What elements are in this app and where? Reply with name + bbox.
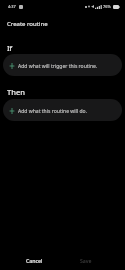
staticText: 76% xyxy=(103,4,111,9)
staticText: Add what this routine will do. xyxy=(18,108,88,115)
staticText: Save xyxy=(80,257,92,264)
button[interactable]: Save xyxy=(74,254,98,267)
staticText: 4:37 xyxy=(8,4,16,9)
staticText: Then xyxy=(7,87,25,97)
staticText: Add what will trigger this routine. xyxy=(18,63,98,70)
button[interactable]: Cancel xyxy=(20,254,49,267)
staticText: If xyxy=(7,43,13,53)
button[interactable]: Add what will trigger this routine. xyxy=(3,54,122,76)
button[interactable]: Add what this routine will do. xyxy=(3,99,122,121)
staticText: Create routine xyxy=(7,20,48,28)
staticText: Cancel xyxy=(26,257,43,264)
